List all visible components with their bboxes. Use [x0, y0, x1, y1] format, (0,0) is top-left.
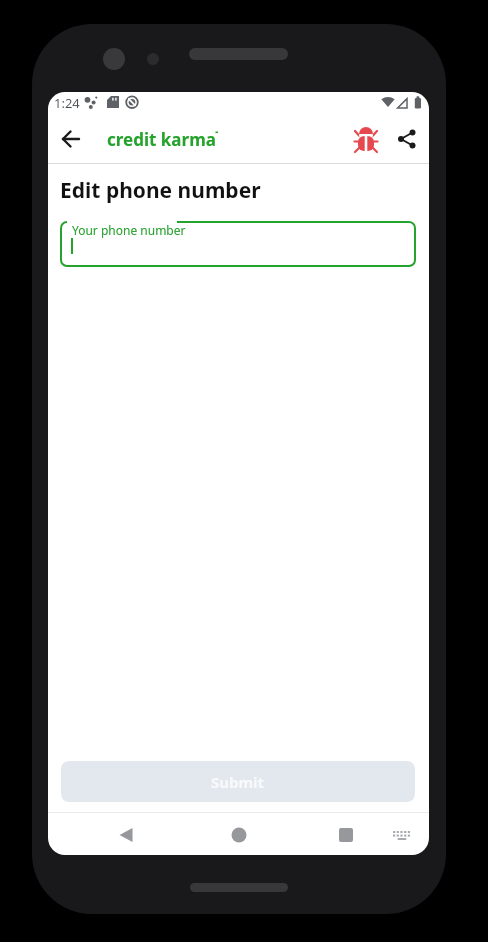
button[interactable]: [389, 822, 415, 848]
button[interactable]: [393, 125, 421, 153]
button[interactable]: [331, 820, 361, 850]
staticText: Submit: [211, 772, 265, 792]
staticText: credit karma: [107, 128, 216, 151]
button[interactable]: [224, 820, 254, 850]
button[interactable]: [55, 123, 87, 155]
button[interactable]: Submit: [61, 761, 415, 802]
button[interactable]: [352, 125, 380, 153]
staticText: Edit phone number: [60, 176, 261, 205]
staticText: Your phone number: [72, 222, 186, 238]
button[interactable]: Your phone number: [60, 221, 416, 267]
staticText: 1:24: [54, 94, 80, 112]
button[interactable]: [111, 820, 141, 850]
